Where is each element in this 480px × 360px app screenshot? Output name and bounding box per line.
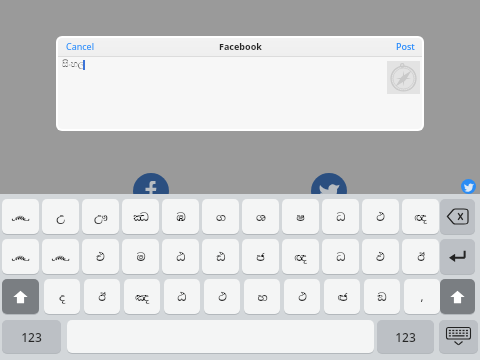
- button[interactable]: ථ: [362, 199, 399, 235]
- button[interactable]: Twitter: [461, 179, 476, 194]
- button[interactable]: හ: [244, 279, 280, 315]
- button[interactable]: ඪ: [202, 239, 239, 275]
- staticText: ග: [216, 210, 226, 224]
- staticText: ඥ: [414, 210, 427, 224]
- button[interactable]: ද: [44, 279, 80, 315]
- staticText: ශ: [256, 210, 266, 224]
- button[interactable]: Shift: [2, 279, 39, 315]
- button[interactable]: ග: [202, 199, 239, 235]
- staticText: ඨ: [177, 290, 187, 304]
- button[interactable]: ධ: [322, 199, 359, 235]
- staticText: ඣ: [133, 210, 149, 224]
- button[interactable]: ,: [404, 279, 440, 315]
- staticText: සිංහල: [62, 60, 85, 69]
- button[interactable]: ඌ: [82, 199, 119, 235]
- staticText: ඪ: [216, 250, 226, 264]
- button[interactable]: ඊ: [402, 239, 439, 275]
- staticText: ෴: [51, 250, 70, 264]
- staticText: ෂ: [296, 210, 305, 224]
- staticText: Post: [396, 40, 415, 52]
- staticText: Facebook: [219, 40, 262, 52]
- button[interactable]: Share on Facebook: [133, 173, 169, 209]
- staticText: ෴: [11, 250, 30, 264]
- button[interactable]: ෴: [2, 239, 39, 275]
- staticText: ඤ: [135, 290, 149, 304]
- staticText: ථ: [376, 210, 385, 224]
- button[interactable]: එ: [82, 239, 119, 275]
- button[interactable]: ඊ: [84, 279, 120, 315]
- button[interactable]: ථ: [204, 279, 240, 315]
- button[interactable]: ෴: [42, 239, 79, 275]
- button[interactable]: ඣ: [122, 199, 159, 235]
- button[interactable]: උ: [42, 199, 79, 235]
- button[interactable]: Space: [67, 320, 374, 354]
- staticText: ඌ: [94, 210, 108, 224]
- button[interactable]: ඵ: [362, 239, 399, 275]
- button[interactable]: Share on Twitter: [311, 173, 347, 209]
- button[interactable]: ම: [122, 239, 159, 275]
- staticText: Cancel: [66, 40, 95, 52]
- staticText: ඨ: [176, 250, 186, 264]
- staticText: ඥ: [294, 250, 307, 264]
- staticText: ධ: [336, 210, 346, 224]
- button[interactable]: Hide keyboard: [439, 320, 478, 354]
- button[interactable]: Post: [392, 38, 419, 55]
- staticText: 123: [21, 329, 42, 345]
- button[interactable]: Cancel: [62, 38, 99, 55]
- staticText: ද: [59, 290, 65, 304]
- staticText: ධ: [336, 250, 346, 264]
- button[interactable]: ඦ: [324, 279, 360, 315]
- button[interactable]: Backspace: [440, 199, 475, 235]
- staticText: ජ: [256, 250, 265, 264]
- button[interactable]: Return: [440, 239, 475, 275]
- staticText: 123: [395, 329, 416, 345]
- staticText: ,: [420, 289, 424, 304]
- button[interactable]: ජ: [242, 239, 279, 275]
- button[interactable]: ථ: [284, 279, 320, 315]
- button[interactable]: ධ: [322, 239, 359, 275]
- button[interactable]: ෂ: [282, 199, 319, 235]
- button[interactable]: ඤ: [124, 279, 160, 315]
- button[interactable]: ෴: [2, 199, 39, 235]
- staticText: ඵ: [376, 250, 385, 264]
- staticText: ඞ: [377, 290, 387, 304]
- staticText: ඊ: [98, 290, 106, 304]
- button[interactable]: ඨ: [162, 239, 199, 275]
- button[interactable]: ඞ: [364, 279, 400, 315]
- staticText: හ: [257, 290, 268, 304]
- button[interactable]: 123: [2, 320, 61, 354]
- staticText: උ: [56, 210, 65, 224]
- staticText: ෴: [11, 210, 30, 224]
- button[interactable]: 123: [377, 320, 434, 354]
- button[interactable]: ඥ: [402, 199, 439, 235]
- staticText: ථ: [298, 290, 307, 304]
- button[interactable]: ඨ: [164, 279, 200, 315]
- button[interactable]: ඥ: [282, 239, 319, 275]
- button[interactable]: ඹ: [162, 199, 199, 235]
- staticText: ථ: [218, 290, 227, 304]
- button[interactable]: Shift: [440, 279, 475, 315]
- staticText: ඹ: [176, 210, 186, 224]
- staticText: එ: [96, 250, 105, 264]
- staticText: ඦ: [337, 290, 348, 304]
- button[interactable]: ශ: [242, 199, 279, 235]
- staticText: ඊ: [417, 250, 425, 264]
- staticText: ම: [136, 250, 146, 264]
